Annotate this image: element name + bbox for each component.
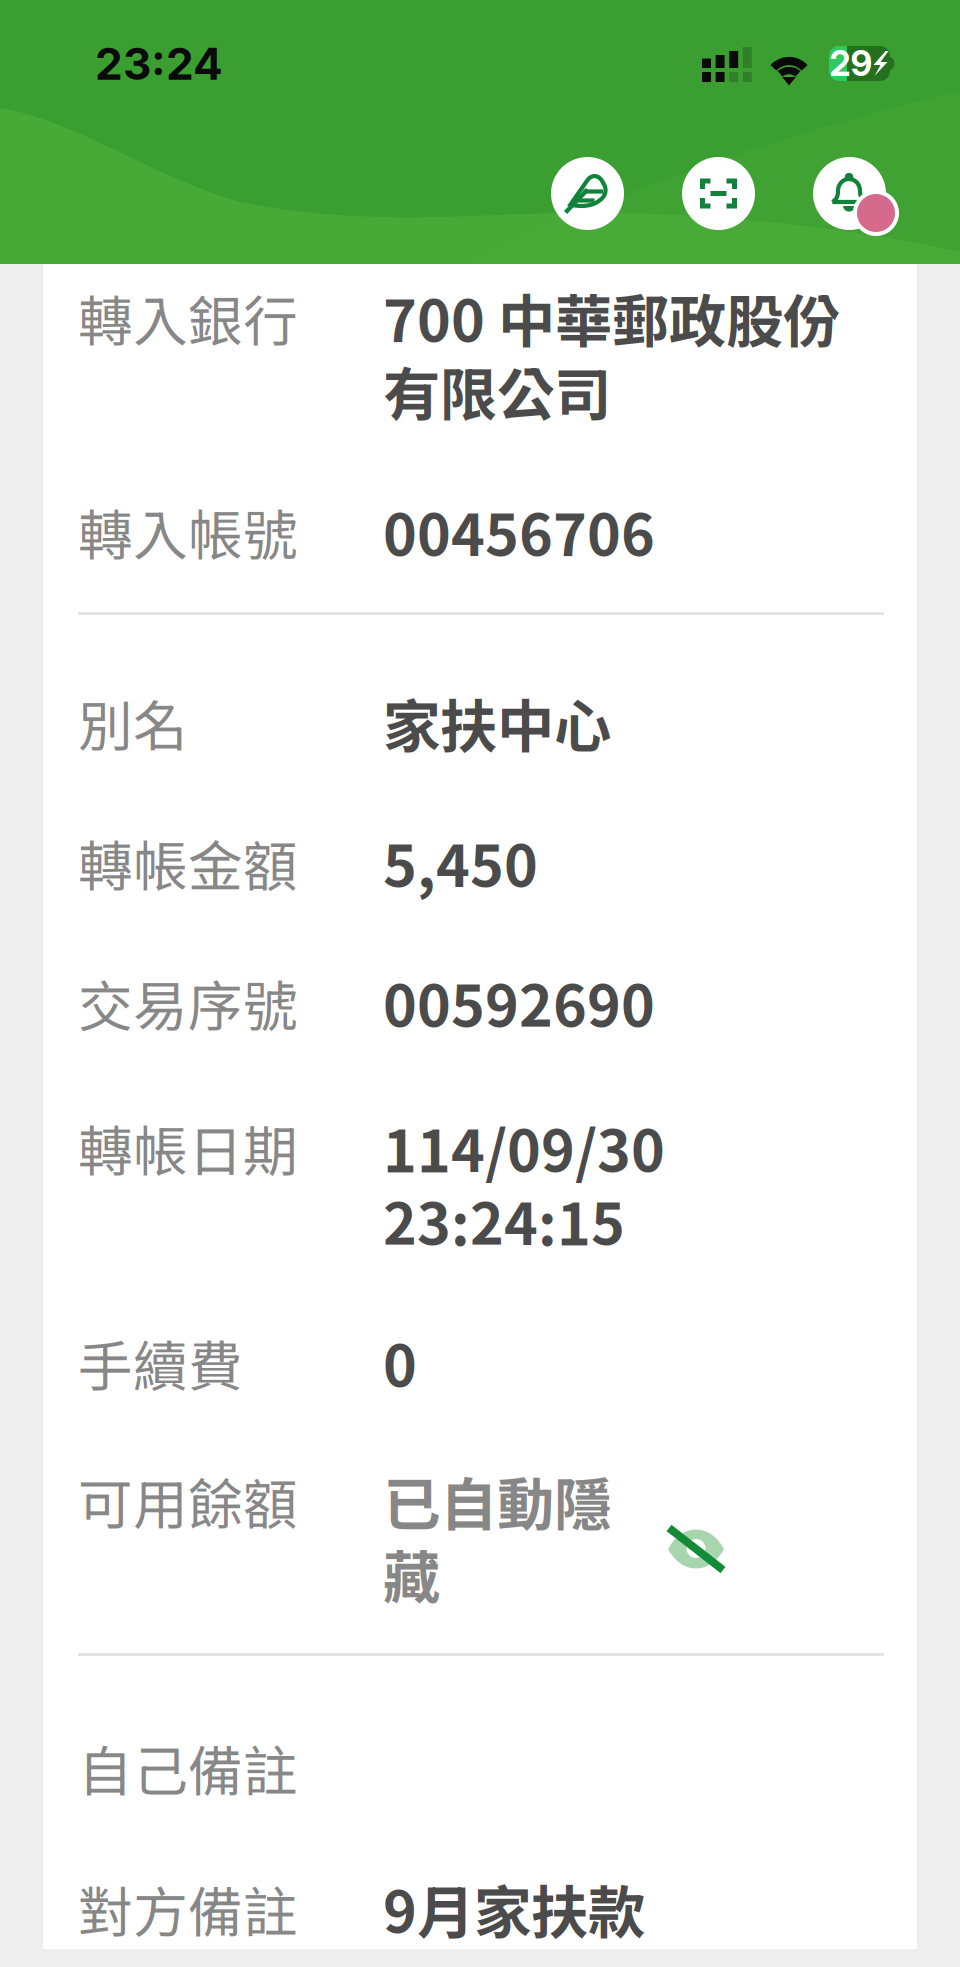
button[interactable]: 顯示餘額 — [667, 1526, 725, 1572]
staticText: 別名 — [78, 683, 188, 762]
staticText: 轉帳金額 — [78, 823, 298, 902]
staticText: 23:24 — [95, 37, 223, 90]
staticText: 手續費 — [78, 1323, 243, 1402]
staticText: 轉入銀行 — [78, 278, 298, 357]
staticText: 對方備註 — [78, 1869, 298, 1948]
staticText: 29 — [829, 42, 872, 84]
staticText: 家扶中心 — [383, 681, 611, 764]
button[interactable]: 掃描 — [682, 157, 755, 230]
staticText: 9月家扶款 — [383, 1867, 645, 1950]
staticText: 114/09/30 — [383, 1106, 665, 1189]
staticText: 交易序號 — [78, 963, 298, 1042]
staticText: 5,450 — [383, 821, 538, 904]
staticText: 轉帳日期 — [78, 1108, 298, 1187]
button[interactable]: 撰寫 — [551, 157, 624, 230]
staticText: 有限公司 — [383, 349, 611, 432]
staticText: 已自動隱 — [383, 1459, 611, 1542]
staticText: 23:24:15 — [383, 1179, 625, 1262]
staticText: 自己備註 — [78, 1728, 298, 1807]
staticText: 藏 — [383, 1532, 440, 1615]
staticText: 700 中華郵政股份 — [383, 276, 840, 359]
staticText: 0 — [383, 1321, 417, 1404]
staticText: 可用餘額 — [78, 1461, 298, 1540]
button[interactable]: 通知 — [813, 157, 886, 230]
staticText: 00592690 — [383, 961, 655, 1044]
staticText: 00456706 — [383, 490, 655, 573]
staticText: 轉入帳號 — [78, 492, 298, 571]
